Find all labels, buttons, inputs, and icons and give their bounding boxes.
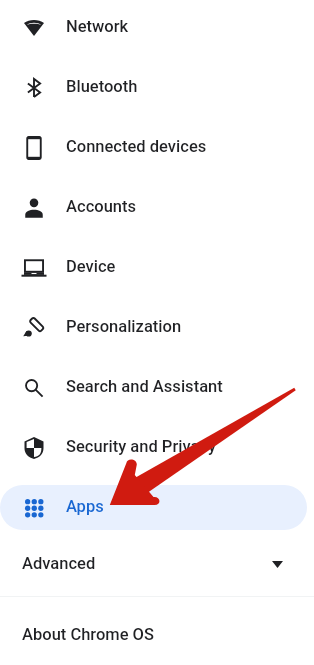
staticText: Bluetooth xyxy=(66,77,138,96)
staticText: Apps xyxy=(66,497,104,516)
staticText: Advanced xyxy=(22,554,96,573)
button[interactable]: Connected devices xyxy=(0,125,307,170)
button[interactable]: Device xyxy=(0,245,307,290)
staticText: Accounts xyxy=(66,197,137,216)
other: Expand advanced settings xyxy=(272,561,283,568)
staticText: Connected devices xyxy=(66,137,207,156)
button[interactable]: Bluetooth xyxy=(0,65,307,110)
staticText: Network xyxy=(66,17,129,36)
button[interactable]: Security and Privacy xyxy=(0,425,307,470)
button[interactable]: Accounts xyxy=(0,185,307,230)
staticText: Personalization xyxy=(66,317,182,336)
button[interactable]: Search and Assistant xyxy=(0,365,307,410)
staticText: Security and Privacy xyxy=(66,437,217,456)
button[interactable]: Personalization xyxy=(0,305,307,350)
button[interactable]: Advanced xyxy=(0,538,314,590)
staticText: Search and Assistant xyxy=(66,377,223,396)
button[interactable]: Apps xyxy=(0,485,307,530)
button[interactable]: Network xyxy=(0,5,307,50)
staticText: About Chrome OS xyxy=(22,625,154,644)
button[interactable]: About Chrome OS xyxy=(0,597,314,665)
staticText: Device xyxy=(66,257,116,276)
